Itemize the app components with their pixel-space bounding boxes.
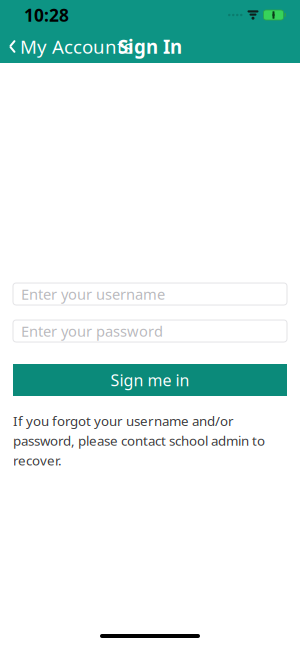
staticText: 10:28 bbox=[24, 3, 69, 26]
staticText: Sign me in bbox=[110, 369, 189, 391]
staticText: Sign In bbox=[118, 34, 182, 59]
button[interactable]: Enter your password bbox=[13, 320, 287, 342]
staticText: My Accounts bbox=[20, 34, 133, 59]
button[interactable]: Sign me in bbox=[13, 364, 287, 396]
staticText: If you forgot your username and/or passw… bbox=[13, 412, 265, 469]
staticText: Enter your password bbox=[21, 321, 163, 341]
staticText: Enter your username bbox=[21, 284, 165, 304]
button[interactable]: My Accounts bbox=[0, 28, 133, 65]
button[interactable]: Enter your username bbox=[13, 283, 287, 305]
